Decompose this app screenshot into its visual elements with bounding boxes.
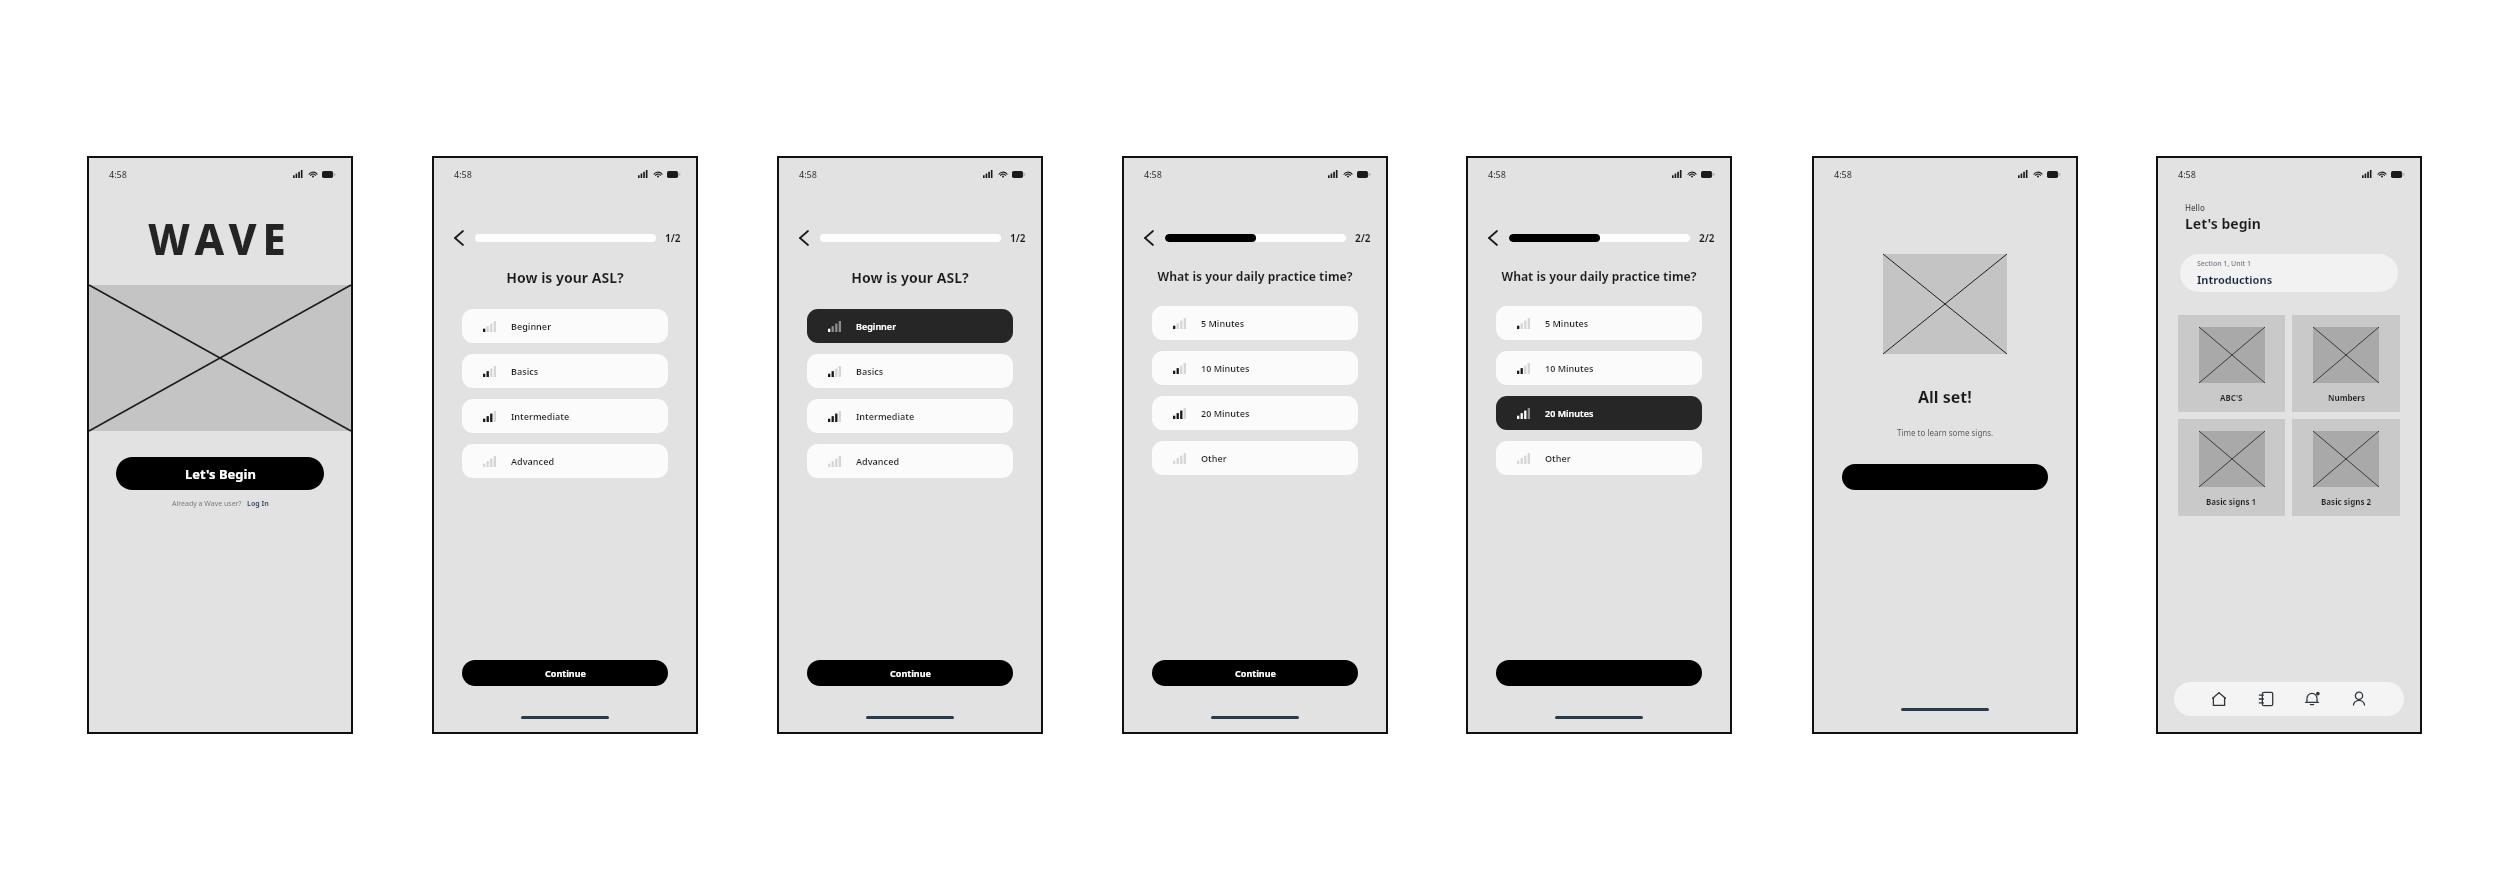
button[interactable]: Back (1139, 228, 1159, 248)
staticText: 20 Minutes (1201, 407, 1250, 419)
staticText: 1/2 (1010, 231, 1026, 245)
staticText: 4:58 (1834, 168, 1852, 180)
staticText: Already a Wave user? (172, 499, 247, 509)
staticText: ABC'S (2220, 392, 2243, 403)
button[interactable]: Continue (1496, 660, 1702, 686)
button[interactable]: Section 1, Unit 1 (2180, 254, 2398, 292)
staticText: Basic signs 1 (2206, 496, 2257, 507)
staticText: 4:58 (109, 168, 127, 180)
staticText: Continue (890, 667, 931, 679)
button[interactable]: Log In (247, 499, 269, 509)
button[interactable]: Home (2204, 684, 2234, 714)
button[interactable]: Continue (1152, 660, 1358, 686)
button[interactable]: 10 Minutes (1152, 351, 1358, 385)
staticText: 10 Minutes (1545, 362, 1594, 374)
staticText: Let's begin (2185, 214, 2261, 233)
staticText: 20 Minutes (1545, 407, 1594, 419)
button[interactable]: Intermediate (462, 399, 668, 433)
staticText: Time to learn some signs. (1897, 427, 1994, 438)
button[interactable]: Back (794, 228, 814, 248)
button[interactable]: Advanced (807, 444, 1013, 478)
button[interactable]: Back (1483, 228, 1503, 248)
button[interactable]: 10 Minutes (1496, 351, 1702, 385)
button[interactable]: Start learning (1842, 464, 2048, 490)
button[interactable]: Continue (807, 660, 1013, 686)
staticText: All set! (1918, 386, 1972, 408)
button[interactable]: 5 Minutes (1496, 306, 1702, 340)
staticText: Other (1545, 452, 1571, 464)
staticText: Beginner (511, 320, 552, 332)
staticText: 2/2 (1355, 231, 1371, 245)
button[interactable]: Basic signs 2 (2292, 419, 2400, 516)
button[interactable]: Numbers (2292, 315, 2400, 412)
staticText: Log In (247, 499, 269, 509)
button[interactable]: Other (1152, 441, 1358, 475)
button[interactable]: Basics (807, 354, 1013, 388)
button[interactable]: ABC'S (2178, 315, 2285, 412)
staticText: Introductions (2197, 272, 2273, 287)
staticText: Intermediate (511, 410, 570, 422)
staticText: Numbers (2328, 392, 2365, 403)
button[interactable]: 20 Minutes (1152, 396, 1358, 430)
button[interactable]: Basics (462, 354, 668, 388)
button[interactable]: Profile (2344, 684, 2374, 714)
staticText: Continue (1235, 667, 1276, 679)
button[interactable]: Back (449, 228, 469, 248)
staticText: Basic signs 2 (2321, 496, 2372, 507)
button[interactable]: 5 Minutes (1152, 306, 1358, 340)
staticText: Basics (856, 365, 884, 377)
staticText: How is your ASL? (442, 268, 688, 287)
button[interactable]: Let's Begin (116, 457, 324, 490)
staticText: 4:58 (1144, 168, 1162, 180)
button[interactable]: Intermediate (807, 399, 1013, 433)
staticText: Advanced (856, 455, 900, 467)
staticText: 2/2 (1699, 231, 1715, 245)
button[interactable]: Notifications (2297, 684, 2327, 714)
button[interactable]: 20 Minutes (1496, 396, 1702, 430)
staticText: 4:58 (799, 168, 817, 180)
button[interactable]: Basic signs 1 (2178, 419, 2285, 516)
staticText: 4:58 (1488, 168, 1506, 180)
staticText: Intermediate (856, 410, 915, 422)
staticText: 10 Minutes (1201, 362, 1250, 374)
staticText: Continue (545, 667, 586, 679)
button[interactable]: Other (1496, 441, 1702, 475)
staticText: Section 1, Unit 1 (2197, 259, 2252, 269)
staticText: What is your daily practice time? (1476, 268, 1722, 284)
staticText: 5 Minutes (1545, 317, 1589, 329)
staticText: Advanced (511, 455, 555, 467)
staticText: Beginner (856, 320, 897, 332)
staticText: Other (1201, 452, 1227, 464)
staticText: 1/2 (665, 231, 681, 245)
staticText: What is your daily practice time? (1132, 268, 1378, 284)
staticText: Basics (511, 365, 539, 377)
staticText: 5 Minutes (1201, 317, 1245, 329)
staticText: Hello (2185, 202, 2205, 213)
staticText: Let's Begin (185, 465, 256, 483)
button[interactable]: Lessons (2251, 684, 2281, 714)
staticText: 4:58 (2178, 168, 2196, 180)
button[interactable]: Beginner (462, 309, 668, 343)
staticText: WAVE (89, 210, 351, 267)
button[interactable]: Continue (462, 660, 668, 686)
staticText: How is your ASL? (787, 268, 1033, 287)
button[interactable]: Beginner (807, 309, 1013, 343)
staticText: 4:58 (454, 168, 472, 180)
button[interactable]: Advanced (462, 444, 668, 478)
